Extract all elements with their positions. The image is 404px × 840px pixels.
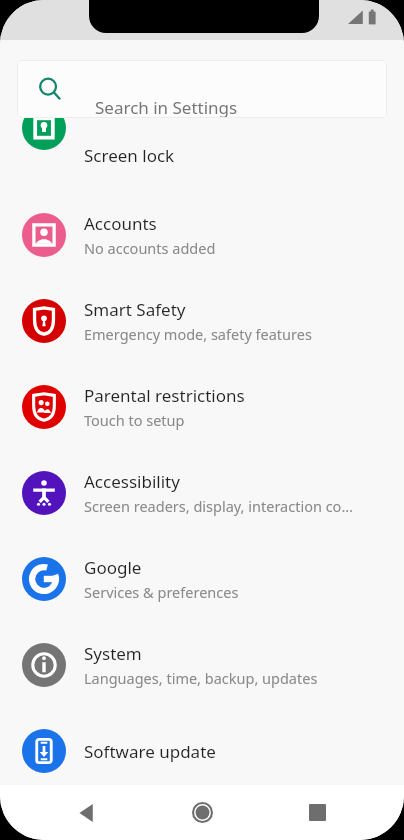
staticText: No accounts added bbox=[84, 238, 216, 258]
button[interactable]: Home bbox=[174, 785, 230, 840]
button[interactable]: Search in Settings bbox=[17, 60, 387, 118]
staticText: Search in Settings bbox=[95, 96, 238, 118]
staticText: Services & preferences bbox=[84, 582, 239, 602]
staticText: System bbox=[84, 642, 142, 665]
staticText: Parental restrictions bbox=[84, 384, 245, 407]
staticText: Google bbox=[84, 556, 142, 579]
button[interactable]: Accessibility bbox=[0, 450, 404, 536]
staticText: Smart Safety bbox=[84, 298, 186, 321]
staticText: Software update bbox=[84, 740, 216, 763]
button[interactable]: Recent apps bbox=[289, 785, 345, 840]
button[interactable]: Accounts bbox=[0, 192, 404, 278]
button[interactable]: System bbox=[0, 622, 404, 708]
staticText: Touch to setup bbox=[84, 410, 185, 430]
staticText: Screen lock bbox=[84, 144, 175, 167]
button[interactable]: Parental restrictions bbox=[0, 364, 404, 450]
staticText: Accessibility bbox=[84, 470, 180, 493]
button[interactable]: Smart Safety bbox=[0, 278, 404, 364]
staticText: Emergency mode, safety features bbox=[84, 324, 312, 344]
staticText: Accounts bbox=[84, 212, 157, 235]
staticText: Screen readers, display, interaction co… bbox=[84, 496, 353, 516]
button[interactable]: Software update bbox=[0, 708, 404, 794]
staticText: Languages, time, backup, updates bbox=[84, 668, 318, 688]
button[interactable]: Back bbox=[59, 785, 115, 840]
button[interactable]: Screen lock bbox=[0, 128, 404, 174]
button[interactable]: Google bbox=[0, 536, 404, 622]
